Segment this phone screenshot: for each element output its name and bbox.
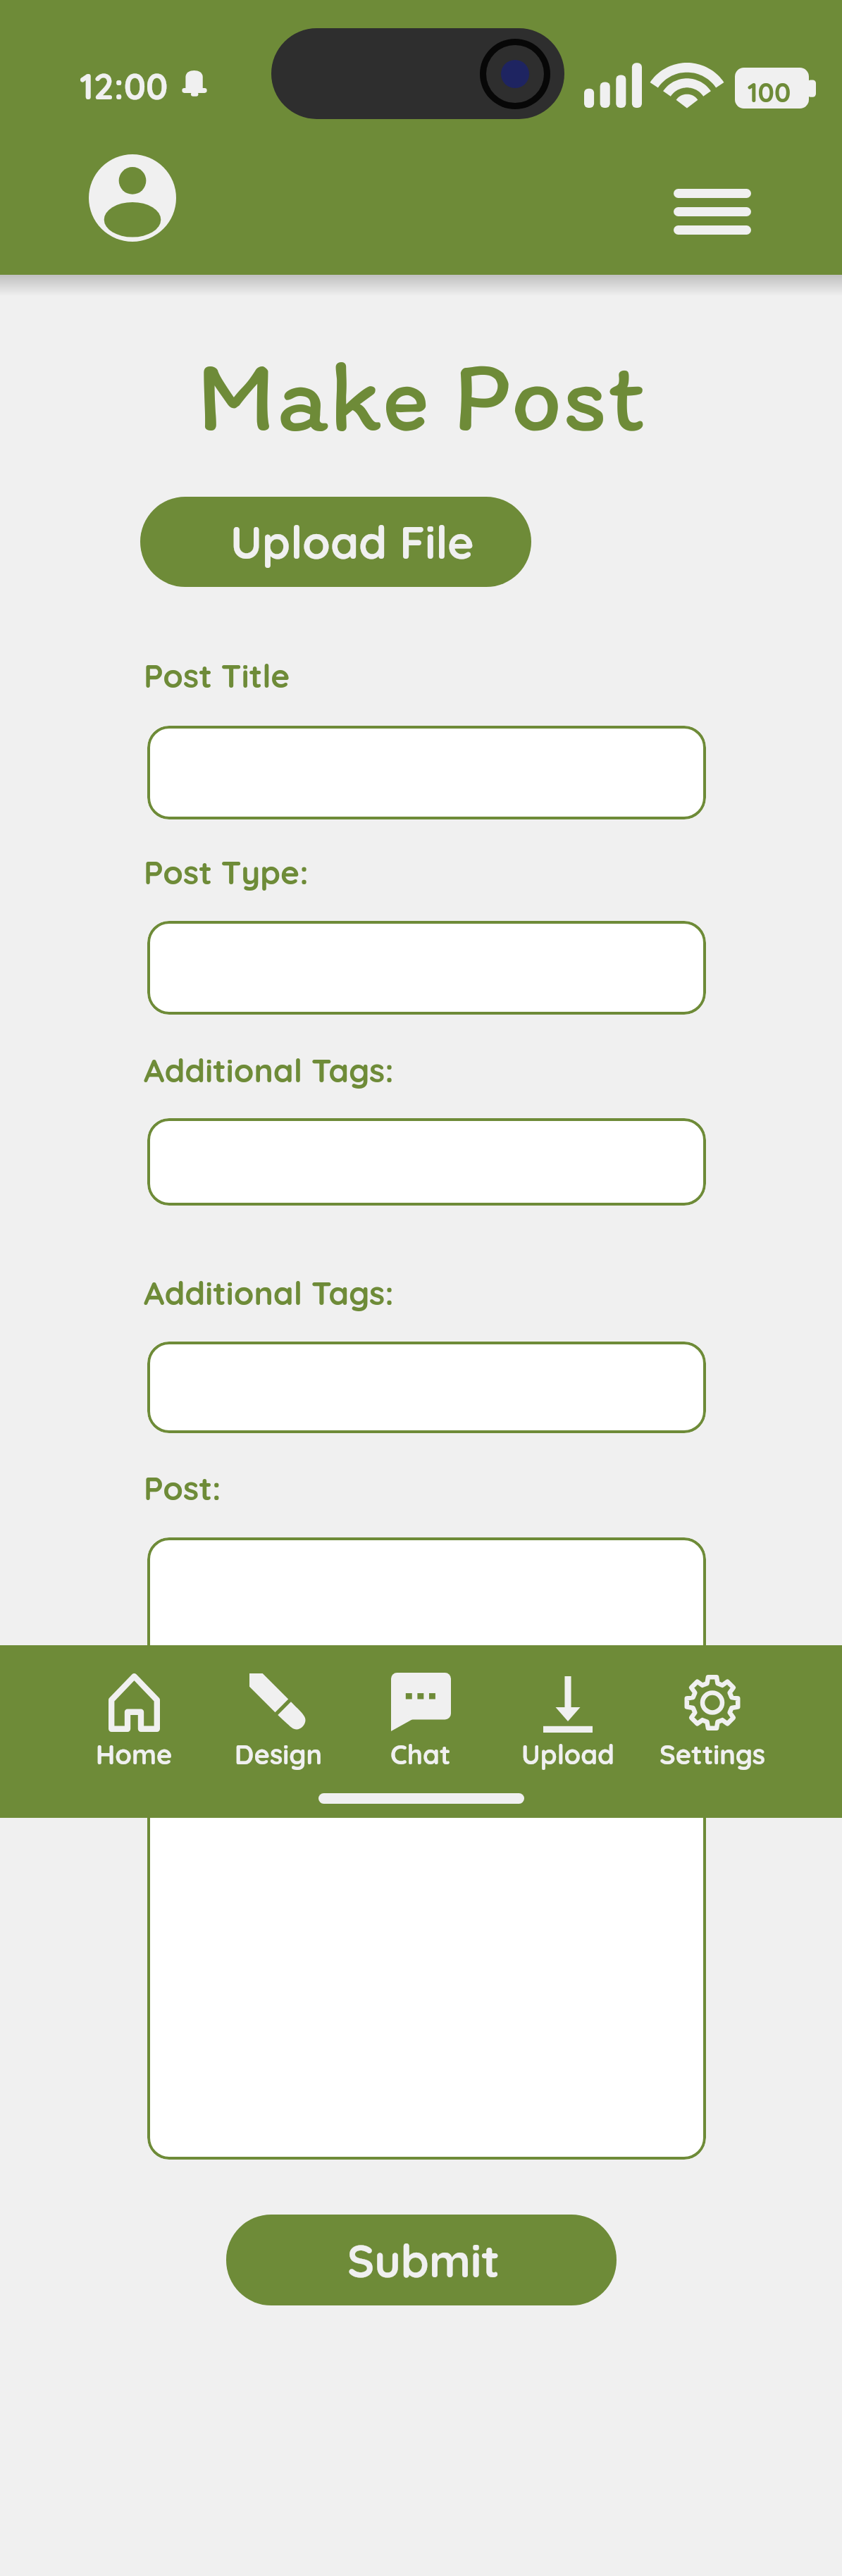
staticText: Submit xyxy=(347,2232,500,2289)
staticText: Chat xyxy=(390,1738,451,1771)
staticText: Settings xyxy=(660,1738,765,1771)
staticText: Make Post xyxy=(0,334,842,456)
button[interactable]: Upload xyxy=(497,1645,639,1786)
staticText: Upload File xyxy=(230,514,474,570)
staticText: Upload xyxy=(521,1738,614,1771)
staticText: 100 xyxy=(729,75,810,109)
button[interactable] xyxy=(147,726,706,819)
staticText: Additional Tags: xyxy=(144,1272,394,1313)
button[interactable]: Upload File xyxy=(140,497,531,587)
button[interactable] xyxy=(147,921,706,1015)
button[interactable]: Menu xyxy=(664,180,761,243)
button[interactable]: Chat xyxy=(349,1645,492,1786)
button[interactable]: Submit xyxy=(226,2215,617,2305)
button[interactable]: Settings xyxy=(641,1645,784,1786)
button[interactable]: Profile xyxy=(89,154,176,242)
button[interactable] xyxy=(147,1342,706,1433)
staticText: Post: xyxy=(144,1468,221,1509)
staticText: Design xyxy=(235,1738,323,1771)
staticText: Post Type: xyxy=(144,852,309,893)
staticText: Post Title xyxy=(144,655,290,696)
staticText: Home xyxy=(96,1738,173,1771)
button[interactable]: Home xyxy=(63,1645,205,1786)
staticText: Additional Tags: xyxy=(144,1050,394,1091)
button[interactable]: Design xyxy=(207,1645,349,1786)
button[interactable] xyxy=(147,1118,706,1206)
staticText: 12:00 xyxy=(80,63,168,109)
button[interactable] xyxy=(147,1537,706,2160)
